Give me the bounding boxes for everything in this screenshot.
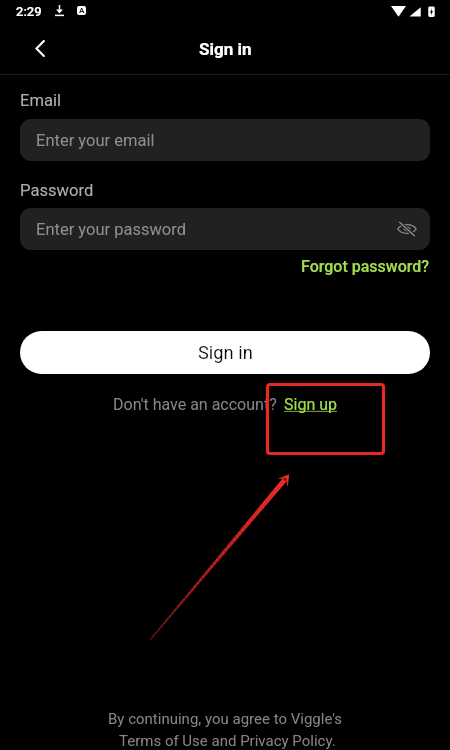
staticText: Terms of Use and Privacy Policy. [119, 732, 336, 750]
staticText: 2:29 [16, 4, 42, 19]
button[interactable]: Sign up [284, 395, 337, 414]
staticText: Sign in [199, 39, 252, 59]
staticText: Enter your email [36, 131, 155, 150]
button[interactable]: Show password [391, 213, 423, 245]
button[interactable]: Sign in [20, 331, 430, 374]
staticText: Password [20, 181, 94, 200]
staticText: Email [20, 91, 62, 110]
button[interactable]: Forgot password? [301, 257, 430, 276]
staticText: Sign in [198, 342, 253, 363]
staticText: Don't have an account? [113, 395, 277, 414]
staticText: Enter your password [36, 220, 187, 239]
staticText: Forgot password? [301, 257, 430, 276]
staticText: A [79, 6, 85, 15]
button[interactable]: Enter your email [20, 119, 430, 161]
button[interactable]: Enter your password [20, 208, 430, 250]
button[interactable]: Back [24, 32, 56, 64]
staticText: By continuing, you agree to Viggle's [108, 710, 343, 728]
staticText: Sign up [284, 395, 337, 414]
